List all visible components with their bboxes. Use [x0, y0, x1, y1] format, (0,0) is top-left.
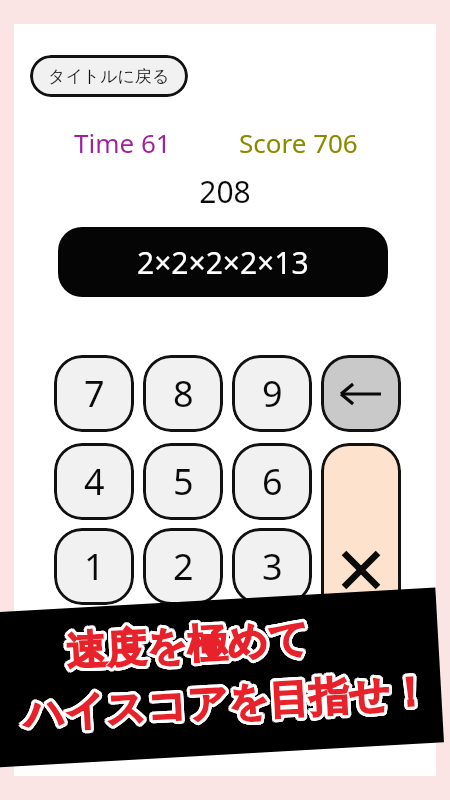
staticText: 3 [262, 542, 283, 591]
staticText: 8 [173, 369, 194, 418]
staticText: 5 [173, 457, 194, 506]
button[interactable]: 9 [232, 355, 312, 432]
button[interactable]: タイトルに戻る [30, 55, 188, 97]
button[interactable]: 6 [232, 443, 312, 520]
staticText: 1 [84, 542, 105, 591]
staticText: タイトルに戻る [48, 66, 170, 87]
staticText: Time 61 [74, 125, 171, 160]
staticText: 7 [84, 369, 105, 418]
staticText: 6 [262, 457, 283, 506]
button[interactable]: 2 [143, 528, 223, 605]
button[interactable]: 4 [54, 443, 134, 520]
button[interactable]: Backspace [321, 355, 401, 432]
button[interactable]: 1 [54, 528, 134, 605]
button[interactable]: 7 [54, 355, 134, 432]
button[interactable]: 8 [143, 355, 223, 432]
staticText: 2 [173, 542, 194, 591]
button[interactable]: 3 [232, 528, 312, 605]
button[interactable]: 5 [143, 443, 223, 520]
staticText: Score 706 [239, 125, 358, 160]
button[interactable]: Multiply [321, 443, 401, 693]
staticText: 4 [84, 457, 105, 506]
staticText: 9 [262, 369, 283, 418]
staticText: 2×2×2×2×13 [137, 242, 309, 283]
staticText: 208 [199, 171, 251, 212]
